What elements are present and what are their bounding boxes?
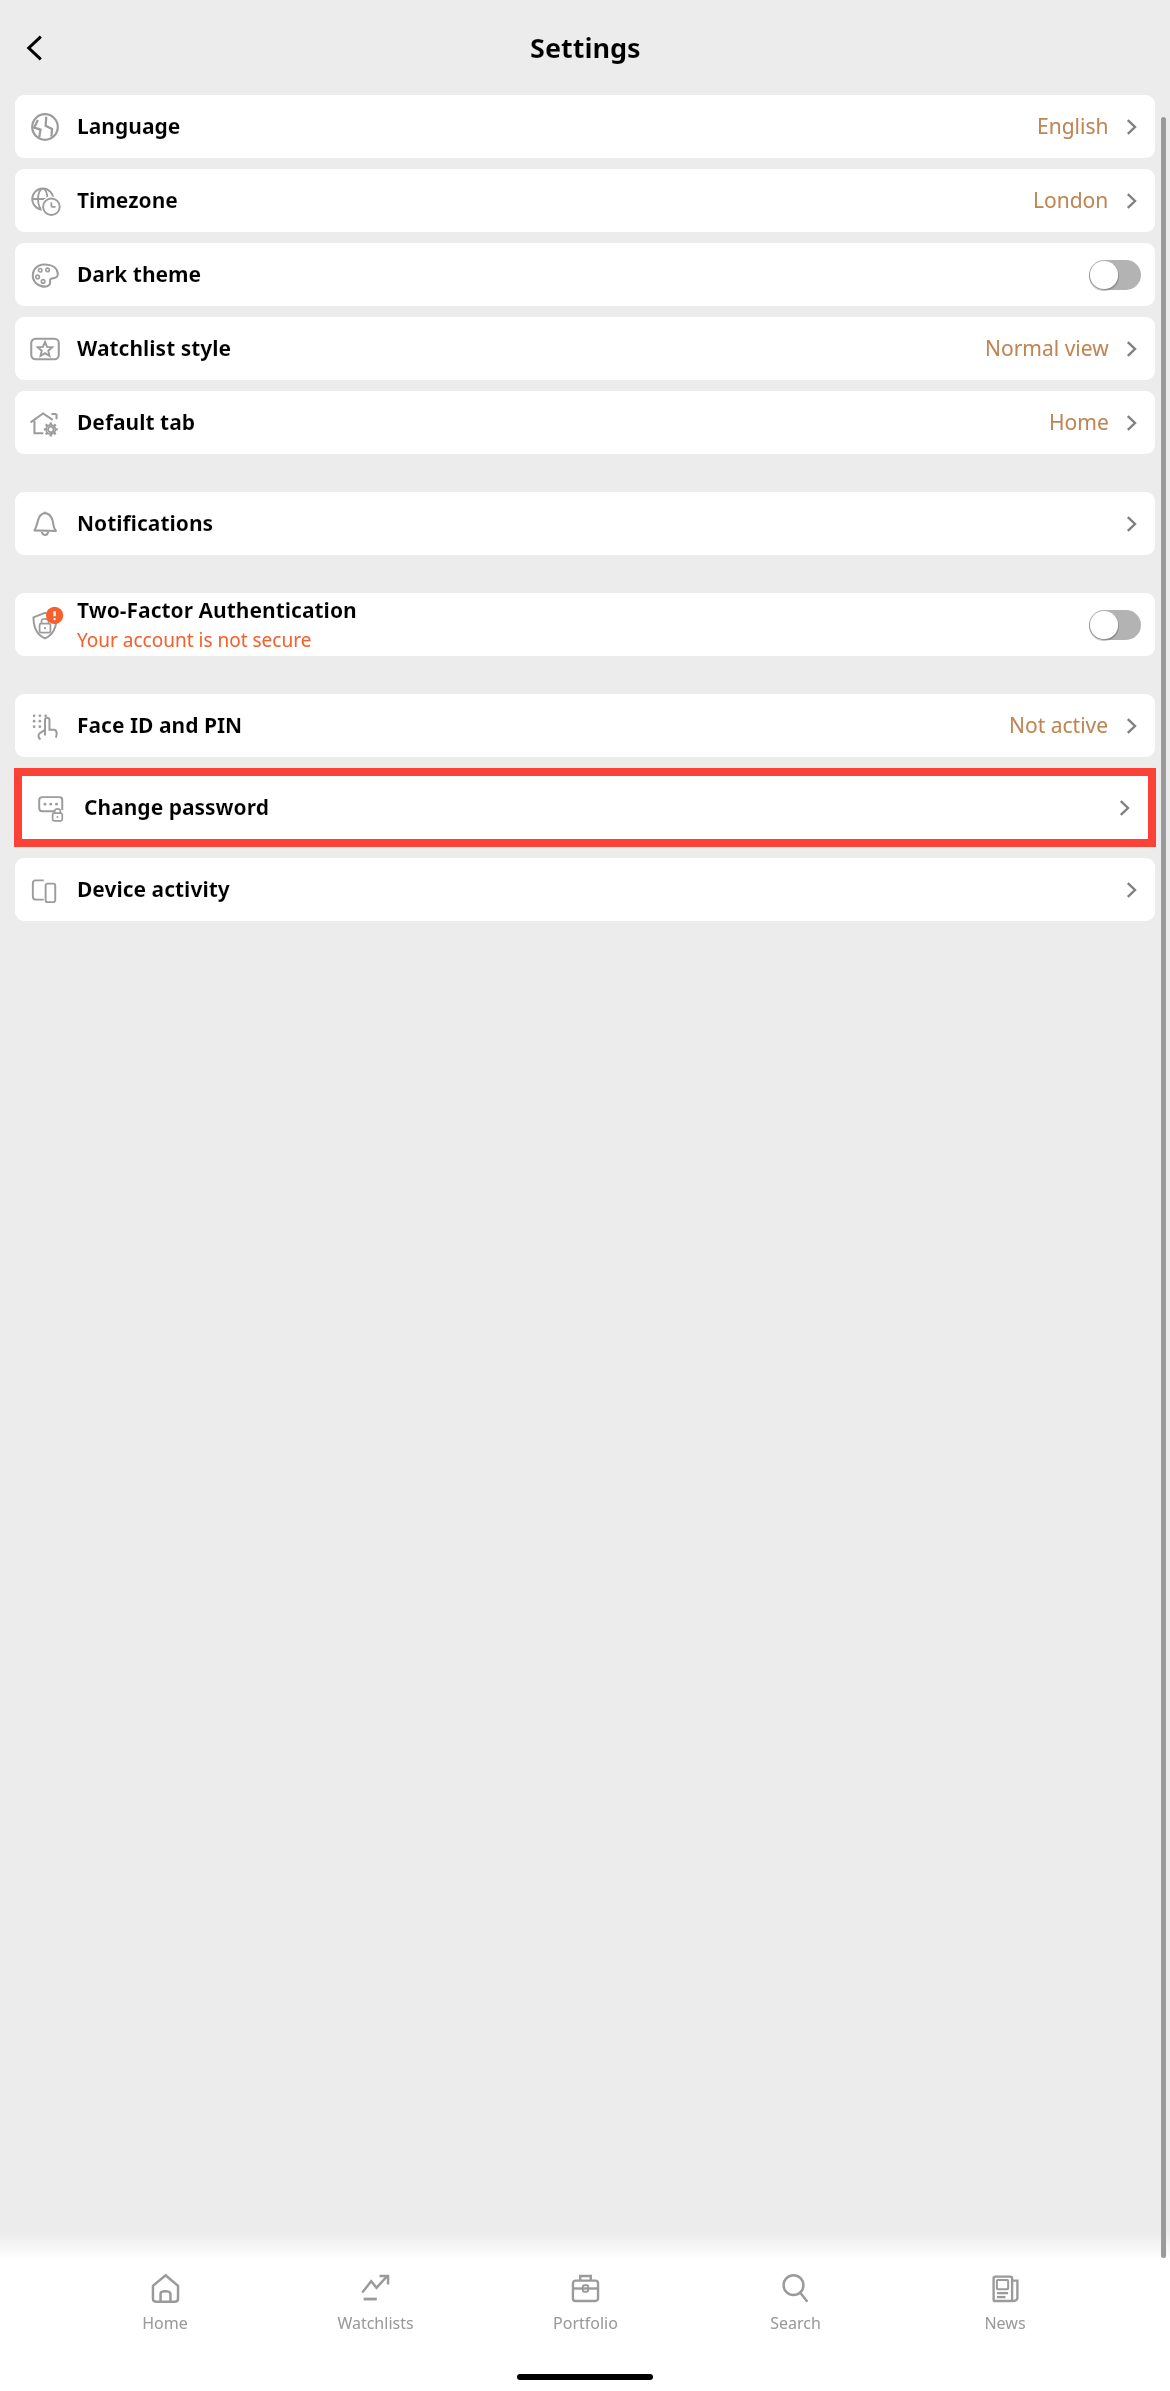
staticText: Two-Factor Authentication [77,596,357,625]
staticText: Search [770,2312,821,2334]
button[interactable]: Toggle [1089,610,1141,640]
staticText: English [1037,112,1109,141]
button[interactable]: Back [8,20,64,76]
button[interactable]: Toggle [1089,260,1141,290]
staticText: Home [1049,408,1109,437]
staticText: London [1033,186,1109,215]
button[interactable]: Home [120,2272,210,2334]
staticText: Normal view [985,334,1109,363]
staticText: Dark theme [77,260,202,289]
button[interactable]: News [960,2272,1050,2334]
button[interactable]: Dark theme [15,243,1155,306]
staticText: Home [142,2312,188,2334]
staticText: Device activity [77,875,230,904]
button[interactable]: Portfolio [540,2272,630,2334]
button[interactable]: Change password [22,776,1148,839]
staticText: Face ID and PIN [77,711,243,740]
button[interactable]: Watchlist style [15,317,1155,380]
button[interactable]: Language [15,95,1155,158]
staticText: Portfolio [553,2312,618,2334]
button[interactable]: Notifications [15,492,1155,555]
button[interactable]: Search [750,2272,840,2334]
button[interactable]: Face ID and PIN [15,694,1155,757]
staticText: Watchlists [337,2312,414,2334]
staticText: Change password [84,793,269,822]
button[interactable]: Watchlists [330,2272,420,2334]
staticText: Default tab [77,408,196,437]
button[interactable]: Timezone [15,169,1155,232]
button[interactable]: Default tab [15,391,1155,454]
button[interactable]: Two-Factor Authentication [15,593,1155,656]
staticText: Settings [530,29,641,66]
button[interactable]: Device activity [15,858,1155,921]
staticText: Language [77,112,181,141]
staticText: Your account is not secure [77,627,312,653]
staticText: Timezone [77,186,178,215]
staticText: News [984,2312,1026,2334]
staticText: Notifications [77,509,214,538]
staticText: Watchlist style [77,334,232,363]
staticText: Not active [1009,711,1109,740]
